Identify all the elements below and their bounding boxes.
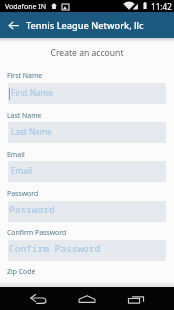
staticText: Last Name [11, 126, 52, 137]
staticText: Email [11, 165, 33, 176]
staticText: Vodafone IN [5, 2, 46, 12]
staticText: Last Name [7, 111, 42, 120]
staticText: Confirm Password [9, 242, 101, 255]
button[interactable]: Back [0, 12, 26, 38]
button[interactable]: Back [20, 287, 56, 310]
button[interactable]: Email [8, 161, 166, 182]
staticText: Email [7, 150, 25, 159]
staticText: First Name [11, 87, 53, 98]
staticText: Confirm Password [7, 228, 67, 237]
staticText: Zip Code [7, 267, 36, 276]
staticText: Password [7, 189, 39, 198]
button[interactable]: Password [8, 201, 166, 222]
staticText: First Name [7, 71, 43, 80]
button[interactable]: Recent apps [118, 287, 154, 310]
staticText: Create an account [0, 47, 174, 59]
staticText: Tennis League Network, llc [26, 19, 144, 32]
button[interactable]: First Name [8, 83, 166, 104]
button[interactable]: Confirm Password [8, 240, 166, 261]
staticText: Password [9, 203, 55, 216]
button[interactable]: Last Name [8, 122, 166, 143]
staticText: 11:42 [151, 1, 172, 12]
button[interactable]: Home [69, 287, 105, 310]
